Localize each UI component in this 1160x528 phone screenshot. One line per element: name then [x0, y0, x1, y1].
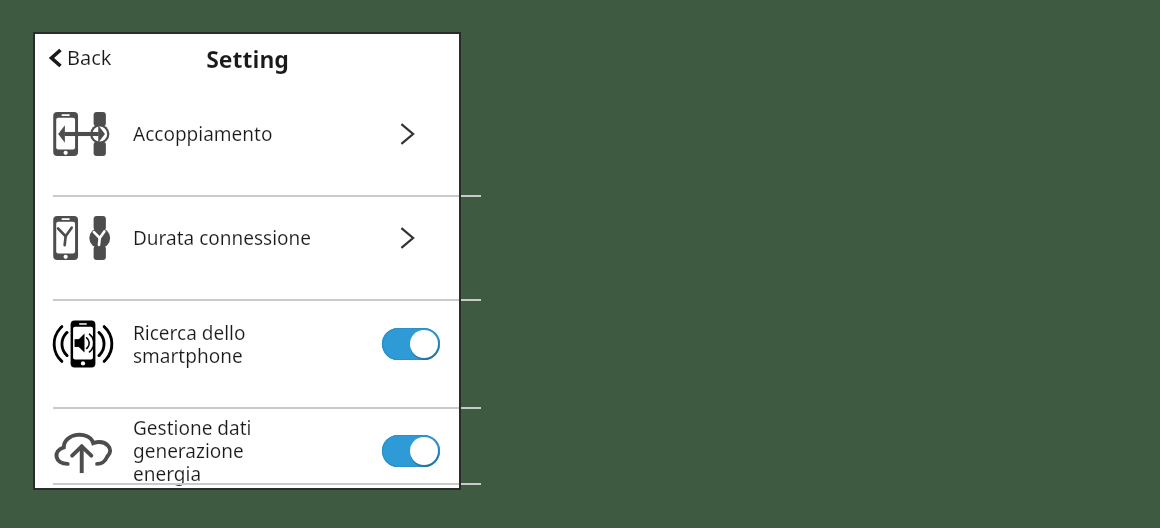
- button[interactable]: Durata connessione: [33, 186, 461, 290]
- button[interactable]: Toggle Gestione dati generazione energia: [382, 435, 440, 467]
- button[interactable]: Open Accoppiamento: [393, 120, 421, 148]
- staticText: Setting: [206, 43, 289, 74]
- button[interactable]: Ricerca dello smartphone: [33, 290, 461, 398]
- button[interactable]: Open Durata connessione: [393, 224, 421, 252]
- button[interactable]: Accoppiamento: [33, 82, 461, 186]
- staticText: Accoppiamento: [133, 121, 357, 147]
- staticText: Back: [67, 44, 112, 71]
- button[interactable]: Toggle Ricerca dello smartphone: [382, 328, 440, 360]
- staticText: Ricerca dello smartphone: [133, 320, 357, 369]
- staticText: Gestione dati generazione energia: [133, 415, 357, 487]
- staticText: Durata connessione: [133, 225, 357, 251]
- button[interactable]: Back: [45, 40, 116, 75]
- button[interactable]: Gestione dati generazione energia: [33, 398, 461, 504]
